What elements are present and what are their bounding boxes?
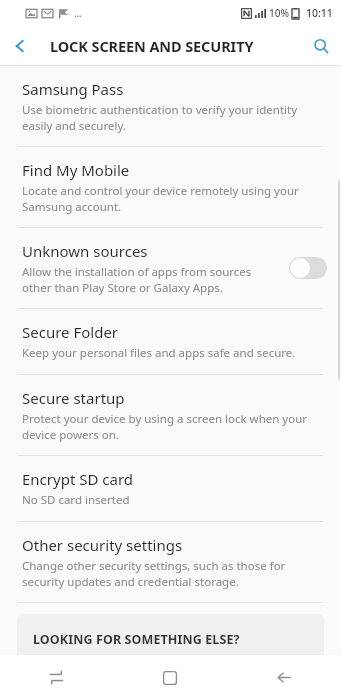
staticText: Samsung Pass bbox=[22, 79, 124, 99]
button[interactable]: Secure startup bbox=[0, 375, 341, 455]
staticText: Find My Mobile bbox=[22, 160, 130, 180]
staticText: 10:11 bbox=[306, 6, 333, 20]
button[interactable]: Recents bbox=[0, 655, 113, 700]
staticText: Use biometric authentication to verify y… bbox=[22, 102, 327, 133]
staticText: ... bbox=[74, 7, 82, 19]
staticText: Locate and control your device remotely … bbox=[22, 183, 327, 214]
staticText: Encrypt SD card bbox=[22, 469, 134, 489]
staticText: Protect your device by using a screen lo… bbox=[22, 411, 327, 442]
button[interactable]: Find My Mobile bbox=[0, 147, 341, 227]
button[interactable]: LOOKING FOR SOMETHING ELSE? bbox=[17, 614, 324, 694]
staticText: No SD card inserted bbox=[22, 492, 130, 508]
button[interactable]: Other security settings bbox=[0, 522, 341, 602]
button[interactable]: Unknown sources toggle bbox=[289, 257, 327, 279]
staticText: Secure startup bbox=[22, 388, 125, 408]
button[interactable]: Home bbox=[113, 655, 227, 700]
button[interactable]: Back bbox=[227, 655, 341, 700]
staticText: LOOKING FOR SOMETHING ELSE? bbox=[33, 631, 240, 648]
staticText: Keep your personal files and apps safe a… bbox=[22, 345, 296, 361]
staticText: Other security settings bbox=[22, 535, 183, 555]
button[interactable]: Samsung Pass bbox=[0, 66, 341, 146]
button[interactable]: Search bbox=[301, 26, 341, 66]
staticText: Change other security settings, such as … bbox=[22, 558, 327, 589]
staticText: Secure Folder bbox=[22, 322, 119, 342]
staticText: 10% bbox=[269, 6, 289, 20]
staticText: Allow the installation of apps from sour… bbox=[22, 264, 281, 295]
button[interactable]: Unknown sources bbox=[0, 228, 341, 308]
staticText: Unknown sources bbox=[22, 241, 148, 261]
staticText: BACKUP AND RESTORE bbox=[33, 657, 174, 674]
button[interactable]: Encrypt SD card bbox=[0, 456, 341, 521]
staticText: LOCK SCREEN AND SECURITY bbox=[50, 36, 254, 56]
button[interactable]: Secure Folder bbox=[0, 309, 341, 374]
button[interactable]: Back bbox=[0, 26, 40, 66]
